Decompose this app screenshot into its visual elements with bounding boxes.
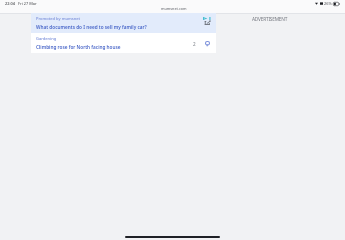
button[interactable]: Comments — [205, 41, 210, 47]
staticText: Promoted by mumsnet — [36, 16, 80, 21]
staticText: 22:04 — [5, 1, 15, 6]
staticText: Fri 27 Mar — [18, 1, 37, 6]
button[interactable]: Promoted by mumsnet — [31, 13, 216, 33]
staticText: What documents do I need to sell my fami… — [36, 24, 147, 30]
button[interactable]: Gardening — [31, 33, 216, 53]
button[interactable]: Open advert in new tab — [203, 17, 211, 25]
staticText: 26% — [324, 1, 332, 6]
staticText: Gardening — [36, 36, 57, 41]
staticText: 2 — [193, 41, 196, 47]
staticText: Climbing rose for North facing house — [36, 44, 121, 50]
staticText: mumsnet.com — [161, 6, 187, 11]
staticText: ADVERTISEMENT — [252, 16, 288, 23]
